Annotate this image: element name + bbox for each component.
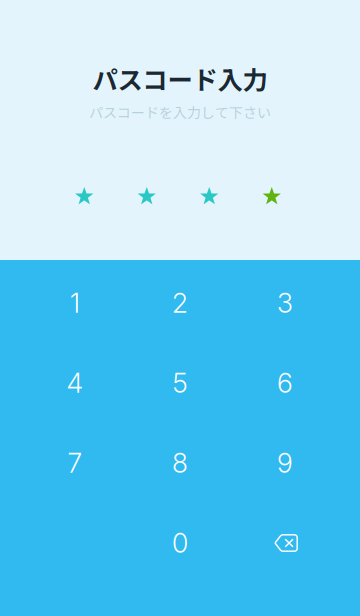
- button[interactable]: 6: [232, 343, 337, 423]
- button[interactable]: 5: [127, 343, 232, 423]
- staticText: 2: [172, 287, 188, 319]
- staticText: 9: [277, 447, 293, 479]
- button[interactable]: 0: [127, 503, 232, 583]
- staticText: 4: [66, 367, 83, 399]
- staticText: 7: [67, 447, 82, 479]
- button[interactable]: 7: [22, 423, 127, 503]
- staticText: 0: [172, 527, 188, 559]
- button[interactable]: 4: [22, 343, 127, 423]
- button[interactable]: 3: [232, 263, 337, 343]
- staticText: 3: [277, 287, 293, 319]
- button[interactable]: 9: [232, 423, 337, 503]
- staticText: 8: [172, 447, 188, 479]
- staticText: 1: [70, 287, 80, 319]
- button[interactable]: 1: [22, 263, 127, 343]
- button[interactable]: 2: [127, 263, 232, 343]
- staticText: 5: [172, 367, 187, 399]
- staticText: パスコード入力: [92, 60, 267, 97]
- button[interactable]: 8: [127, 423, 232, 503]
- button[interactable]: Delete: [232, 503, 337, 583]
- staticText: 6: [277, 367, 293, 399]
- staticText: パスコードを入力して下さい: [89, 102, 271, 122]
